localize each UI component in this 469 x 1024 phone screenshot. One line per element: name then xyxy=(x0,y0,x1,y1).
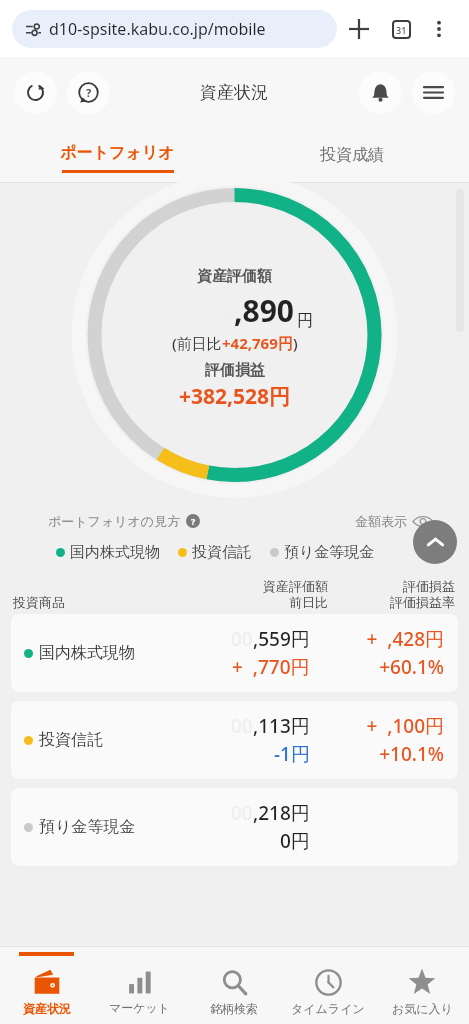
staticText: 預り金等現金 xyxy=(39,817,136,837)
staticText: + ,428円 xyxy=(366,626,444,652)
staticText: 31 xyxy=(396,24,407,36)
button[interactable]: 資産状況 xyxy=(0,946,93,1024)
button[interactable]: マーケット xyxy=(93,946,187,1024)
staticText: ,113円 xyxy=(253,713,310,739)
staticText: 銘柄検索 xyxy=(210,1001,258,1016)
staticText: 金額表示 xyxy=(355,513,407,529)
button[interactable]: Scroll to top xyxy=(413,520,457,564)
staticText: +42,769円 xyxy=(222,333,293,353)
staticText: 00 xyxy=(231,713,253,739)
staticText: ポートフォリオ xyxy=(60,143,175,163)
staticText: ,218円 xyxy=(253,800,310,826)
button[interactable]: ポートフォリオ xyxy=(0,127,234,183)
staticText: タイムライン xyxy=(291,1001,365,1016)
staticText: 資産状況 xyxy=(200,82,268,103)
staticText: 評価損益 xyxy=(205,361,265,380)
staticText: お気に入り xyxy=(392,1001,453,1016)
button[interactable]: 国内株式現物 xyxy=(11,614,458,692)
staticText: -1円 xyxy=(274,741,310,767)
button[interactable]: Tabs xyxy=(381,9,421,49)
staticText: 資産状況 xyxy=(23,1001,71,1016)
button[interactable]: お気に入り xyxy=(375,946,469,1024)
button[interactable]: Toggle amount display xyxy=(355,513,433,529)
staticText: + ,100円 xyxy=(366,713,444,739)
staticText: 投資信託 xyxy=(39,730,103,750)
button[interactable]: Help xyxy=(67,71,110,114)
staticText: 0円 xyxy=(280,828,310,854)
button[interactable]: タイムライン xyxy=(281,946,375,1024)
staticText: 国内株式現物 xyxy=(39,643,135,663)
staticText: ,559円 xyxy=(253,626,310,652)
staticText: 資産評価額 xyxy=(197,267,272,286)
staticText: 評価損益 xyxy=(403,578,455,594)
button[interactable]: 預り金等現金 xyxy=(270,543,375,562)
staticText: 投資信託 xyxy=(192,543,252,562)
staticText: ポートフォリオの見方 xyxy=(48,513,181,529)
button[interactable]: Notifications xyxy=(359,71,402,114)
staticText: ? xyxy=(86,85,92,100)
button[interactable]: 投資信託 xyxy=(11,701,458,779)
button[interactable]: d10-spsite.kabu.co.jp/mobile xyxy=(12,10,337,48)
staticText: 国内株式現物 xyxy=(70,543,160,562)
staticText: d10-spsite.kabu.co.jp/mobile xyxy=(49,18,266,40)
staticText: 円 xyxy=(297,311,313,331)
button[interactable]: Refresh xyxy=(14,71,57,114)
staticText: ) xyxy=(293,333,298,353)
staticText: 00 xyxy=(231,800,253,826)
staticText: (前日比 xyxy=(172,333,222,353)
staticText: 預り金等現金 xyxy=(284,543,375,562)
staticText: マーケット xyxy=(109,1000,171,1015)
staticText: +10.1% xyxy=(379,741,444,767)
button[interactable]: Menu xyxy=(412,71,455,114)
staticText: +60.1% xyxy=(379,654,444,680)
button[interactable]: 預り金等現金 xyxy=(11,788,458,866)
staticText: 前日比 xyxy=(289,594,328,610)
staticText: 評価損益率 xyxy=(390,594,455,610)
staticText: +382,528円 xyxy=(179,382,291,411)
staticText: ,890 xyxy=(234,290,295,331)
staticText: ? xyxy=(191,515,196,527)
button[interactable]: More options xyxy=(421,11,457,47)
button[interactable]: 投資信託 xyxy=(178,543,252,562)
staticText: 資産評価額 xyxy=(263,578,328,594)
button[interactable]: 投資成績 xyxy=(234,127,469,183)
staticText: 投資成績 xyxy=(320,145,384,165)
button[interactable]: 銘柄検索 xyxy=(187,946,281,1024)
button[interactable]: 国内株式現物 xyxy=(56,543,160,562)
button[interactable]: New tab xyxy=(337,7,381,51)
staticText: 投資商品 xyxy=(13,594,65,610)
staticText: 00 xyxy=(231,626,253,652)
staticText: + ,770円 xyxy=(232,654,310,680)
button[interactable]: ポートフォリオの見方 xyxy=(48,513,200,529)
